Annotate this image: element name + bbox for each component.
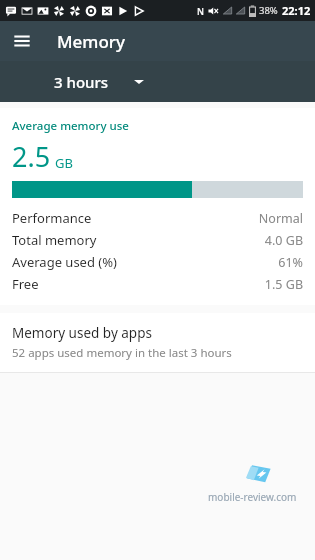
staticText: Free [12, 275, 264, 293]
staticText: 4.0 GB [264, 232, 303, 249]
button[interactable]: Performance [12, 207, 303, 229]
staticText: Total memory [12, 231, 264, 249]
staticText: Average used (%) [12, 253, 278, 271]
staticText: GB [55, 154, 73, 172]
staticText: 1.5 GB [264, 276, 303, 293]
staticText: Normal [258, 210, 303, 227]
button[interactable]: Average used (%) [12, 251, 303, 273]
staticText: N [197, 5, 204, 17]
staticText: Average memory use [12, 118, 129, 134]
button[interactable]: Total memory [12, 229, 303, 251]
staticText: 22:12 [282, 3, 311, 18]
staticText: Memory used by apps [12, 324, 152, 342]
staticText: mobile-review.com [208, 490, 297, 504]
button[interactable]: Open navigation menu [6, 25, 38, 57]
button[interactable]: Free [12, 273, 303, 295]
staticText: Memory [57, 30, 126, 53]
staticText: 61% [278, 254, 303, 271]
button[interactable]: Memory used by apps [0, 313, 315, 373]
staticText: Performance [12, 209, 258, 227]
button[interactable]: 3 hours [48, 66, 150, 98]
staticText: 52 apps used memory in the last 3 hours [12, 345, 232, 361]
staticText: 2.5 [12, 138, 51, 175]
staticText: 38% [259, 4, 278, 17]
staticText: 3 hours [54, 72, 109, 92]
